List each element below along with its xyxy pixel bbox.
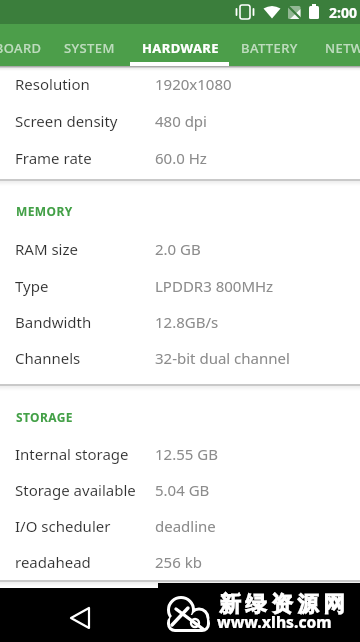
button[interactable]: readahead xyxy=(0,549,360,575)
staticText: 12.8GB/s xyxy=(155,312,219,332)
staticText: Storage available xyxy=(15,480,136,500)
staticText: 480 dpi xyxy=(155,111,207,131)
staticText: STORAGE xyxy=(16,409,73,425)
staticText: Resolution xyxy=(15,74,90,94)
button[interactable]: Channels xyxy=(0,345,360,371)
staticText: 12.55 GB xyxy=(155,444,218,464)
staticText: MEMORY xyxy=(16,203,73,219)
staticText: Frame rate xyxy=(15,148,92,168)
staticText: 256 kb xyxy=(155,552,202,572)
staticText: MAINBOARD xyxy=(0,39,42,57)
staticText: SYSTEM xyxy=(64,39,115,57)
staticText: www.xlhs.com xyxy=(217,611,332,632)
staticText: Type xyxy=(15,276,49,296)
staticText: Internal storage xyxy=(15,444,129,464)
button[interactable]: Screen density xyxy=(0,108,360,134)
staticText: 32-bit dual channel xyxy=(155,348,290,368)
button[interactable]: Frame rate xyxy=(0,145,360,171)
staticText: RAM size xyxy=(15,239,78,259)
staticText: I/O scheduler xyxy=(15,516,111,536)
staticText: LPDDR3 800MHz xyxy=(155,276,274,296)
button[interactable]: Resolution xyxy=(0,71,360,97)
staticText: HARDWARE xyxy=(142,39,219,57)
button[interactable]: HARDWARE xyxy=(142,24,219,66)
button[interactable]: I/O scheduler xyxy=(0,513,360,539)
staticText: NETWORK xyxy=(325,39,360,57)
staticText: 60.0 Hz xyxy=(155,148,207,168)
button[interactable]: NETWORK xyxy=(325,24,360,66)
staticText: 2:00 xyxy=(329,3,357,22)
staticText: 新绿资源网 xyxy=(217,591,347,617)
staticText: deadline xyxy=(155,516,216,536)
staticText: 1920x1080 xyxy=(155,74,232,94)
staticText: 2.0 GB xyxy=(155,239,201,259)
button[interactable]: Bandwidth xyxy=(0,309,360,335)
button[interactable] xyxy=(62,597,98,633)
button[interactable]: Type xyxy=(0,273,360,299)
button[interactable]: RAM size xyxy=(0,236,360,262)
button[interactable]: Internal storage xyxy=(0,441,360,467)
button[interactable]: 新绿资源网 xyxy=(158,583,360,642)
button[interactable]: BATTERY xyxy=(241,24,298,66)
button[interactable]: MAINBOARD xyxy=(0,24,42,66)
staticText: Screen density xyxy=(15,111,118,131)
staticText: readahead xyxy=(15,552,91,572)
staticText: Channels xyxy=(15,348,81,368)
button[interactable]: SYSTEM xyxy=(64,24,115,66)
staticText: BATTERY xyxy=(241,39,298,57)
button[interactable]: Storage available xyxy=(0,477,360,503)
staticText: Bandwidth xyxy=(15,312,92,332)
staticText: 5.04 GB xyxy=(155,480,210,500)
